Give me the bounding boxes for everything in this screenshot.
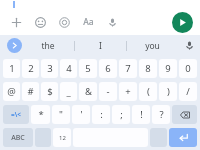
staticText: 2 xyxy=(28,62,34,75)
button[interactable]: Voice typing xyxy=(178,35,200,56)
button[interactable]: / xyxy=(179,82,197,101)
button[interactable]: ; xyxy=(112,105,130,124)
staticText: + xyxy=(125,85,131,98)
staticText: ? xyxy=(159,108,164,121)
button[interactable]: 5 xyxy=(79,59,97,78)
button[interactable]: Emoji xyxy=(31,13,49,31)
button[interactable]: 1 xyxy=(3,59,20,78)
staticText: 12 xyxy=(59,134,66,142)
staticText: 5 xyxy=(85,62,91,75)
button[interactable]: I xyxy=(75,35,126,56)
button[interactable]: * xyxy=(31,105,50,124)
staticText: / xyxy=(186,85,190,98)
staticText: 4 xyxy=(66,62,72,75)
staticText: you xyxy=(145,40,160,52)
button[interactable]: 7 xyxy=(119,59,137,78)
staticText: Aa xyxy=(83,16,94,28)
staticText: ; xyxy=(120,108,123,121)
button[interactable]: ? xyxy=(152,105,170,124)
staticText: ABC xyxy=(11,133,25,143)
button[interactable]: - xyxy=(99,82,117,101)
button[interactable]: Voice input xyxy=(103,13,121,31)
button[interactable]: 6 xyxy=(99,59,117,78)
staticText: # xyxy=(27,85,34,98)
staticText: 3 xyxy=(47,62,53,75)
staticText: - xyxy=(106,85,110,98)
staticText: _ xyxy=(66,85,71,98)
button[interactable]: 4 xyxy=(60,59,77,78)
button[interactable]: =\< xyxy=(3,105,29,124)
button[interactable]: 3 xyxy=(41,59,58,78)
button[interactable]: ! xyxy=(132,105,150,124)
button[interactable]: 0 xyxy=(179,59,197,78)
staticText: & xyxy=(85,85,92,98)
button[interactable]: & xyxy=(79,82,97,101)
staticText: 8 xyxy=(145,62,151,75)
button[interactable]: ' xyxy=(72,105,90,124)
button[interactable]: Expand suggestions xyxy=(7,38,22,53)
staticText: 6 xyxy=(105,62,111,75)
button[interactable]: Enter xyxy=(169,128,197,147)
staticText: 0 xyxy=(185,62,191,75)
button[interactable]: + xyxy=(119,82,137,101)
button[interactable]: Send xyxy=(172,12,193,33)
button[interactable]: you xyxy=(127,35,178,56)
button[interactable]: 9 xyxy=(159,59,177,78)
button[interactable]: 2 xyxy=(22,59,39,78)
staticText: : xyxy=(100,108,103,121)
staticText: * xyxy=(38,108,44,121)
button[interactable]: ABC xyxy=(3,128,33,147)
staticText: " xyxy=(59,108,63,121)
staticText: 7 xyxy=(125,62,131,75)
button[interactable]: $ xyxy=(41,82,58,101)
staticText: I xyxy=(99,40,102,52)
staticText: ' xyxy=(80,108,83,121)
staticText: ( xyxy=(147,85,150,98)
button[interactable]: # xyxy=(22,82,39,101)
staticText: 1 xyxy=(9,62,15,75)
staticText: =\< xyxy=(11,110,21,119)
staticText: the xyxy=(41,40,55,52)
staticText: $ xyxy=(47,85,53,98)
button[interactable]: ( xyxy=(139,82,157,101)
button[interactable]: 12 xyxy=(53,128,71,147)
button[interactable]: _ xyxy=(60,82,77,101)
button[interactable]: Aa xyxy=(79,13,97,31)
button[interactable]: ) xyxy=(159,82,177,101)
button[interactable]: Backspace xyxy=(172,105,197,124)
staticText: 9 xyxy=(165,62,171,75)
button[interactable]: Mention xyxy=(55,13,73,31)
button[interactable]: " xyxy=(52,105,70,124)
button[interactable]: Add xyxy=(7,13,25,31)
staticText: ) xyxy=(167,85,170,98)
button[interactable]: : xyxy=(92,105,110,124)
button[interactable]: 8 xyxy=(139,59,157,78)
staticText: ! xyxy=(140,108,143,121)
staticText: @ xyxy=(7,85,16,98)
button[interactable]: the xyxy=(22,35,74,56)
button[interactable]: @ xyxy=(3,82,20,101)
